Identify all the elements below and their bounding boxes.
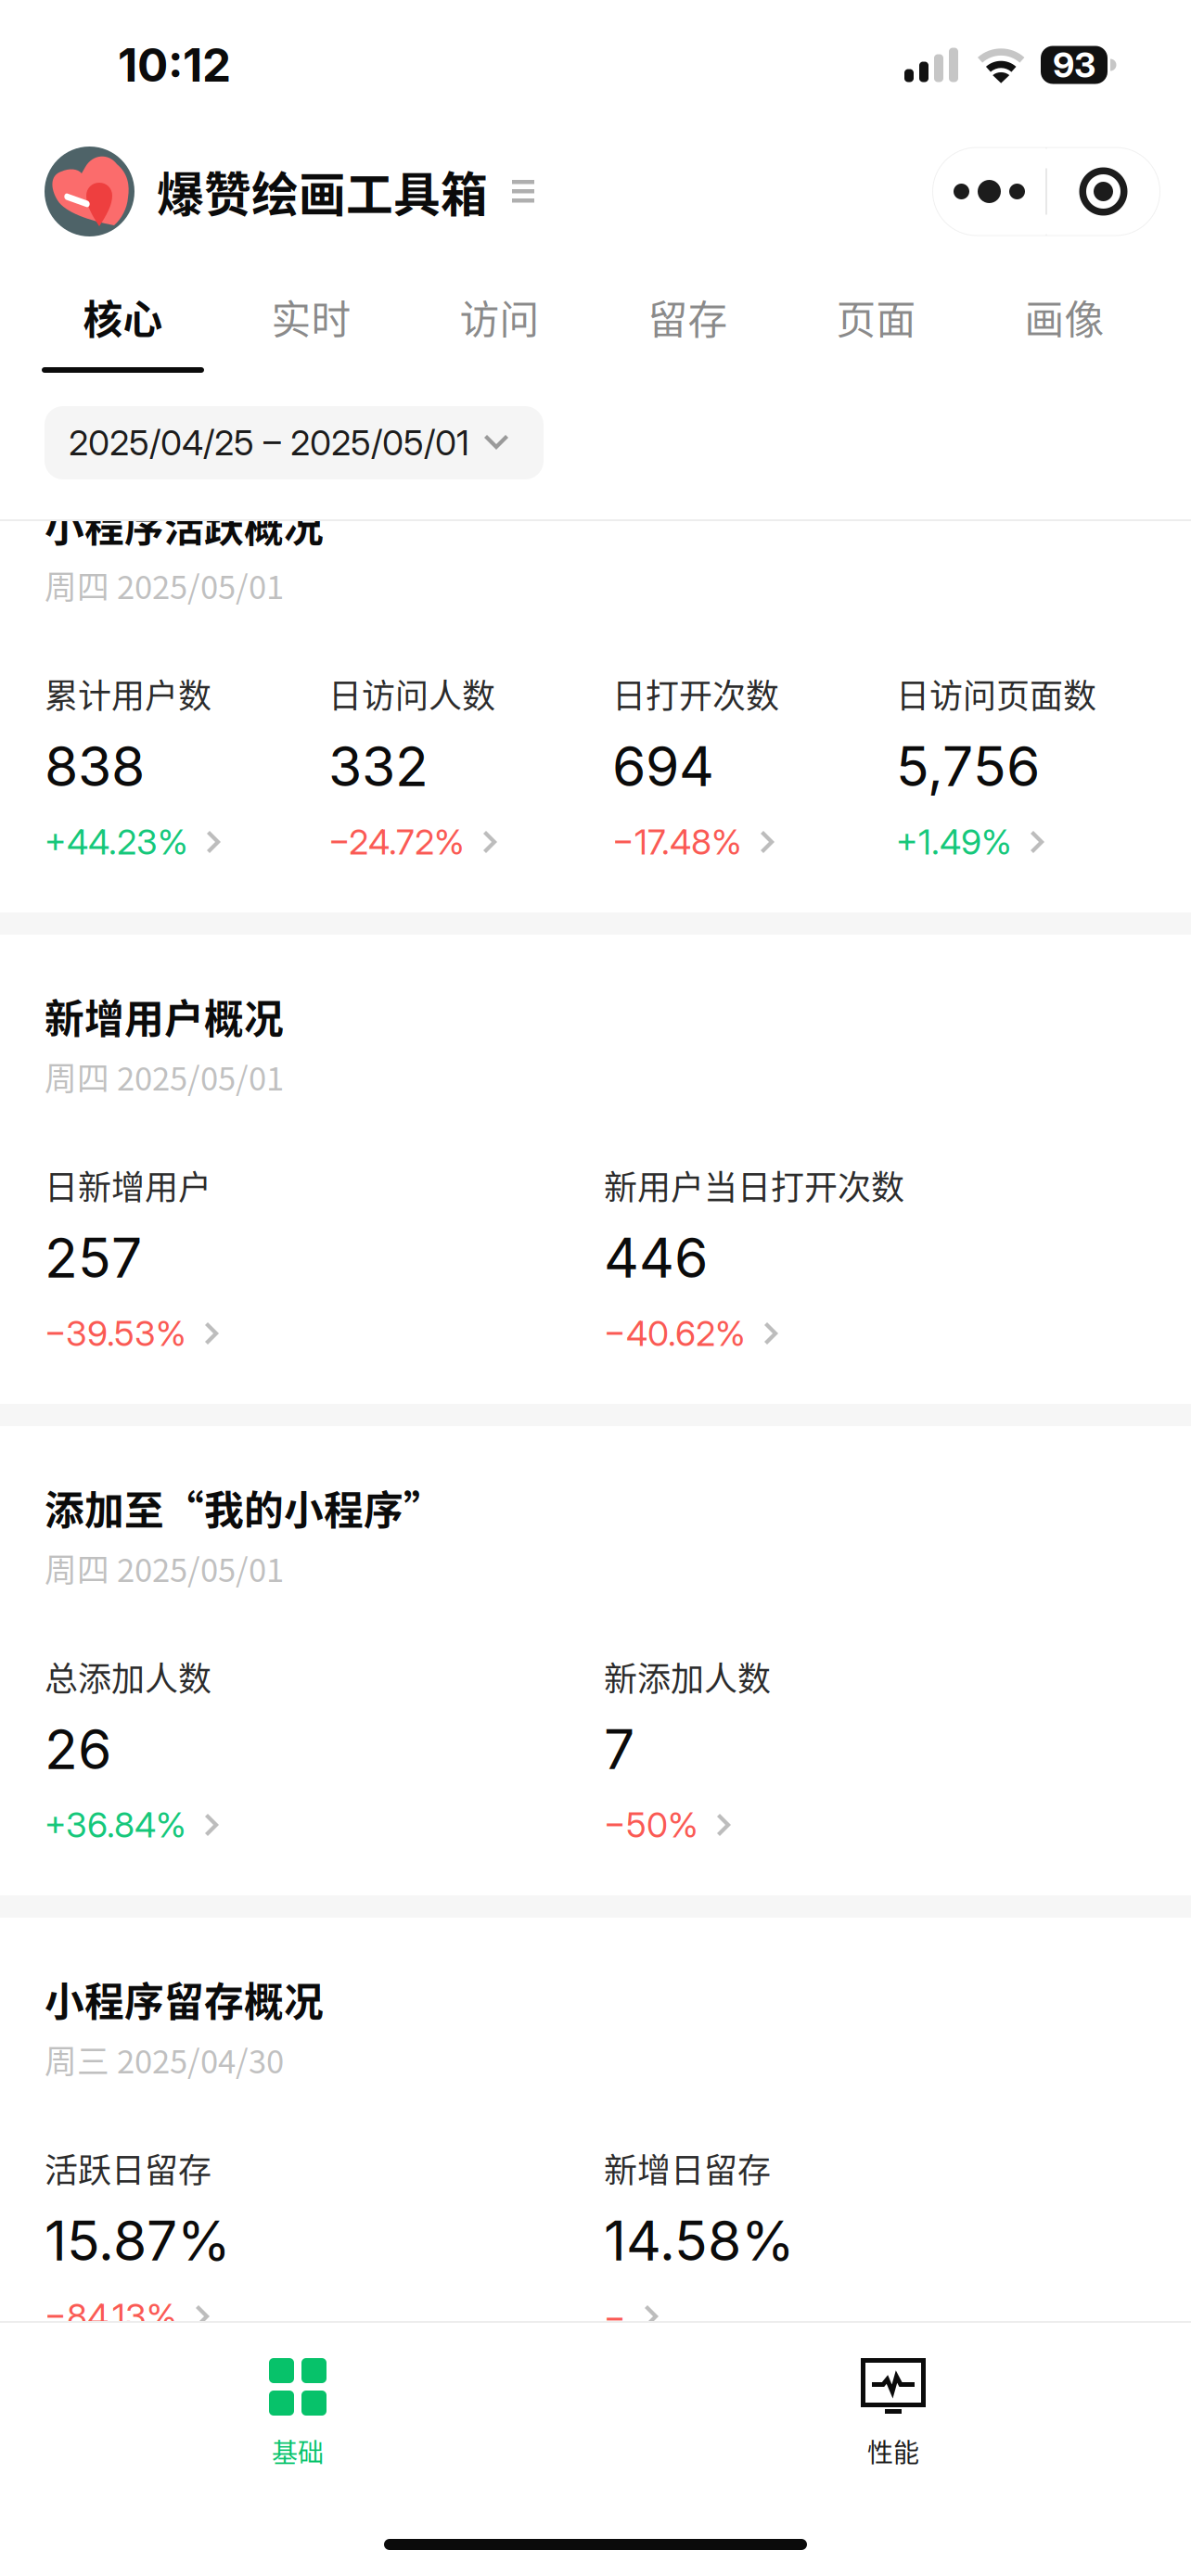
staticText: −84.13% (45, 2295, 177, 2337)
staticText: 小程序留存概况 (45, 1971, 324, 2028)
staticText: +1.49% (896, 821, 1012, 863)
staticText: 周三 2025/04/30 (45, 2036, 284, 2083)
button[interactable]: 日新增用户 (45, 1168, 604, 1340)
staticText: − (604, 2295, 626, 2337)
button[interactable]: Close mini program (1047, 148, 1159, 235)
staticText: 2025/04/25 – 2025/05/01 (69, 422, 469, 464)
staticText: 留存 (648, 288, 728, 346)
button[interactable]: 累计用户数 (45, 677, 328, 848)
staticText: −40.62% (604, 1312, 746, 1354)
staticText: 画像 (1025, 288, 1104, 346)
staticText: −39.53% (45, 1312, 186, 1354)
staticText: 周四 2025/05/01 (45, 1053, 284, 1100)
staticText: 基础 (272, 2432, 324, 2470)
button[interactable]: 画像 (970, 253, 1159, 373)
staticText: 周四 2025/05/01 (45, 1545, 284, 1591)
button[interactable]: 性能 (595, 2323, 1191, 2494)
staticText: 核心 (83, 288, 163, 346)
button[interactable]: 实时 (217, 253, 405, 373)
staticText: 10:12 (118, 37, 231, 93)
button[interactable]: 留存 (594, 253, 782, 373)
staticText: 694 (612, 733, 714, 799)
staticText: 14.58% (604, 2208, 795, 2274)
button[interactable]: 活跃日留存 (45, 2151, 604, 2323)
button[interactable]: 新增日留存 (604, 2151, 1163, 2323)
button[interactable]: 核心 (29, 253, 217, 373)
staticText: 257 (45, 1225, 142, 1291)
staticText: 性能 (867, 2432, 919, 2470)
staticText: 访问 (460, 288, 539, 346)
staticText: 838 (45, 733, 145, 799)
staticText: 活跃日留存 (45, 2144, 211, 2192)
button[interactable]: 2025/04/25 – 2025/05/01 (45, 406, 544, 479)
staticText: 7 (604, 1716, 634, 1782)
staticText: 93 (1053, 44, 1095, 86)
staticText: +36.84% (45, 1804, 186, 1846)
staticText: 日访问人数 (328, 669, 495, 718)
button[interactable]: 日访问页面数 (896, 677, 1180, 848)
staticText: 新用户当日打开次数 (604, 1161, 904, 1209)
staticText: 446 (604, 1225, 708, 1291)
staticText: 页面 (836, 288, 916, 346)
button[interactable]: 新用户当日打开次数 (604, 1168, 1163, 1340)
button[interactable]: 访问 (405, 253, 594, 373)
staticText: 累计用户数 (45, 669, 211, 718)
staticText: −17.48% (612, 821, 742, 863)
staticText: 15.87% (45, 2208, 231, 2274)
staticText: 日打开次数 (612, 669, 779, 718)
staticText: 日新增用户 (45, 1161, 211, 1209)
staticText: 332 (328, 733, 429, 799)
button[interactable]: 日打开次数 (612, 677, 896, 848)
staticText: 爆赞绘画工具箱 (157, 157, 488, 226)
staticText: 新增日留存 (604, 2144, 771, 2192)
staticText: 周四 2025/05/01 (45, 562, 284, 608)
button[interactable]: 总添加人数 (45, 1660, 604, 1831)
staticText: 日访问页面数 (896, 669, 1096, 718)
button[interactable]: 新添加人数 (604, 1660, 1163, 1831)
staticText: 小程序活跃概况 (45, 496, 324, 553)
staticText: +44.23% (45, 821, 188, 863)
staticText: 新添加人数 (604, 1652, 771, 1701)
staticText: 添加至“我的小程序” (45, 1479, 443, 1536)
staticText: 5,756 (896, 733, 1040, 799)
staticText: 实时 (271, 288, 351, 346)
button[interactable]: 日访问人数 (328, 677, 612, 848)
staticText: 新增用户概况 (45, 988, 284, 1045)
staticText: −24.72% (328, 821, 465, 863)
staticText: −50% (604, 1804, 698, 1846)
button[interactable]: 基础 (0, 2323, 595, 2494)
button[interactable]: More options (933, 148, 1045, 235)
button[interactable]: 页面 (782, 253, 970, 373)
button[interactable]: Menu (501, 164, 545, 219)
staticText: 26 (45, 1716, 111, 1782)
staticText: 总添加人数 (45, 1652, 211, 1701)
